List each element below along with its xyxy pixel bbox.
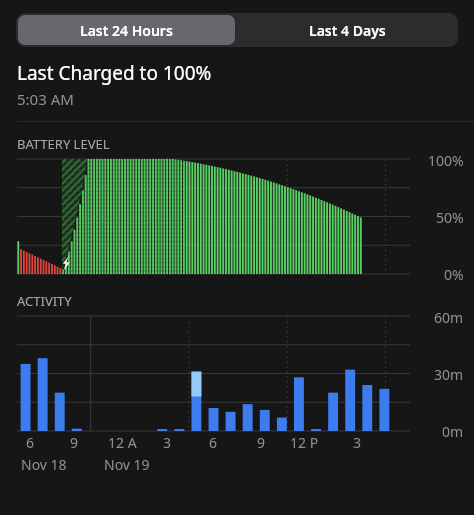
staticText: 0m <box>442 422 464 441</box>
staticText: BATTERY LEVEL <box>17 135 110 153</box>
staticText: 30m <box>434 365 464 384</box>
button[interactable]: Last 4 Days <box>237 13 458 47</box>
staticText: 9 <box>70 433 79 452</box>
staticText: 3 <box>353 433 362 452</box>
staticText: 100% <box>428 151 464 170</box>
staticText: Last 4 Days <box>309 21 386 40</box>
staticText: Nov 18 <box>21 455 67 474</box>
staticText: 0% <box>444 265 464 284</box>
button[interactable]: Last 24 Hours <box>18 15 235 45</box>
staticText: 12 A <box>108 433 137 452</box>
staticText: 3 <box>163 433 172 452</box>
staticText: Last 24 Hours <box>80 21 173 40</box>
staticText: ACTIVITY <box>17 292 72 310</box>
staticText: 6 <box>26 433 35 452</box>
staticText: Nov 19 <box>104 455 150 474</box>
staticText: 5:03 AM <box>17 89 74 109</box>
staticText: Last Charged to 100% <box>17 60 212 86</box>
staticText: 50% <box>436 208 464 227</box>
staticText: 12 P <box>290 433 319 452</box>
staticText: 6 <box>209 433 218 452</box>
staticText: 9 <box>257 433 266 452</box>
staticText: 60m <box>434 308 464 327</box>
